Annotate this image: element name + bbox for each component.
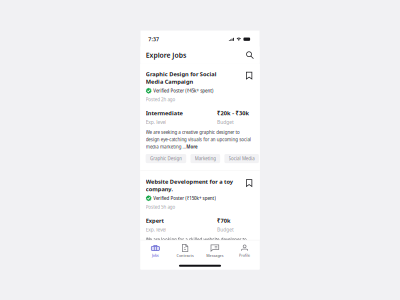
button[interactable]: Graphic Design <box>20 163 154 193</box>
staticText: Budget <box>256 48 311 69</box>
staticText: Marketing <box>182 168 252 188</box>
staticText: We are seeking a creative graphic design… <box>20 82 368 149</box>
staticText: Website Development for a toy company. <box>20 242 309 291</box>
button[interactable]: Marketing <box>168 163 266 193</box>
